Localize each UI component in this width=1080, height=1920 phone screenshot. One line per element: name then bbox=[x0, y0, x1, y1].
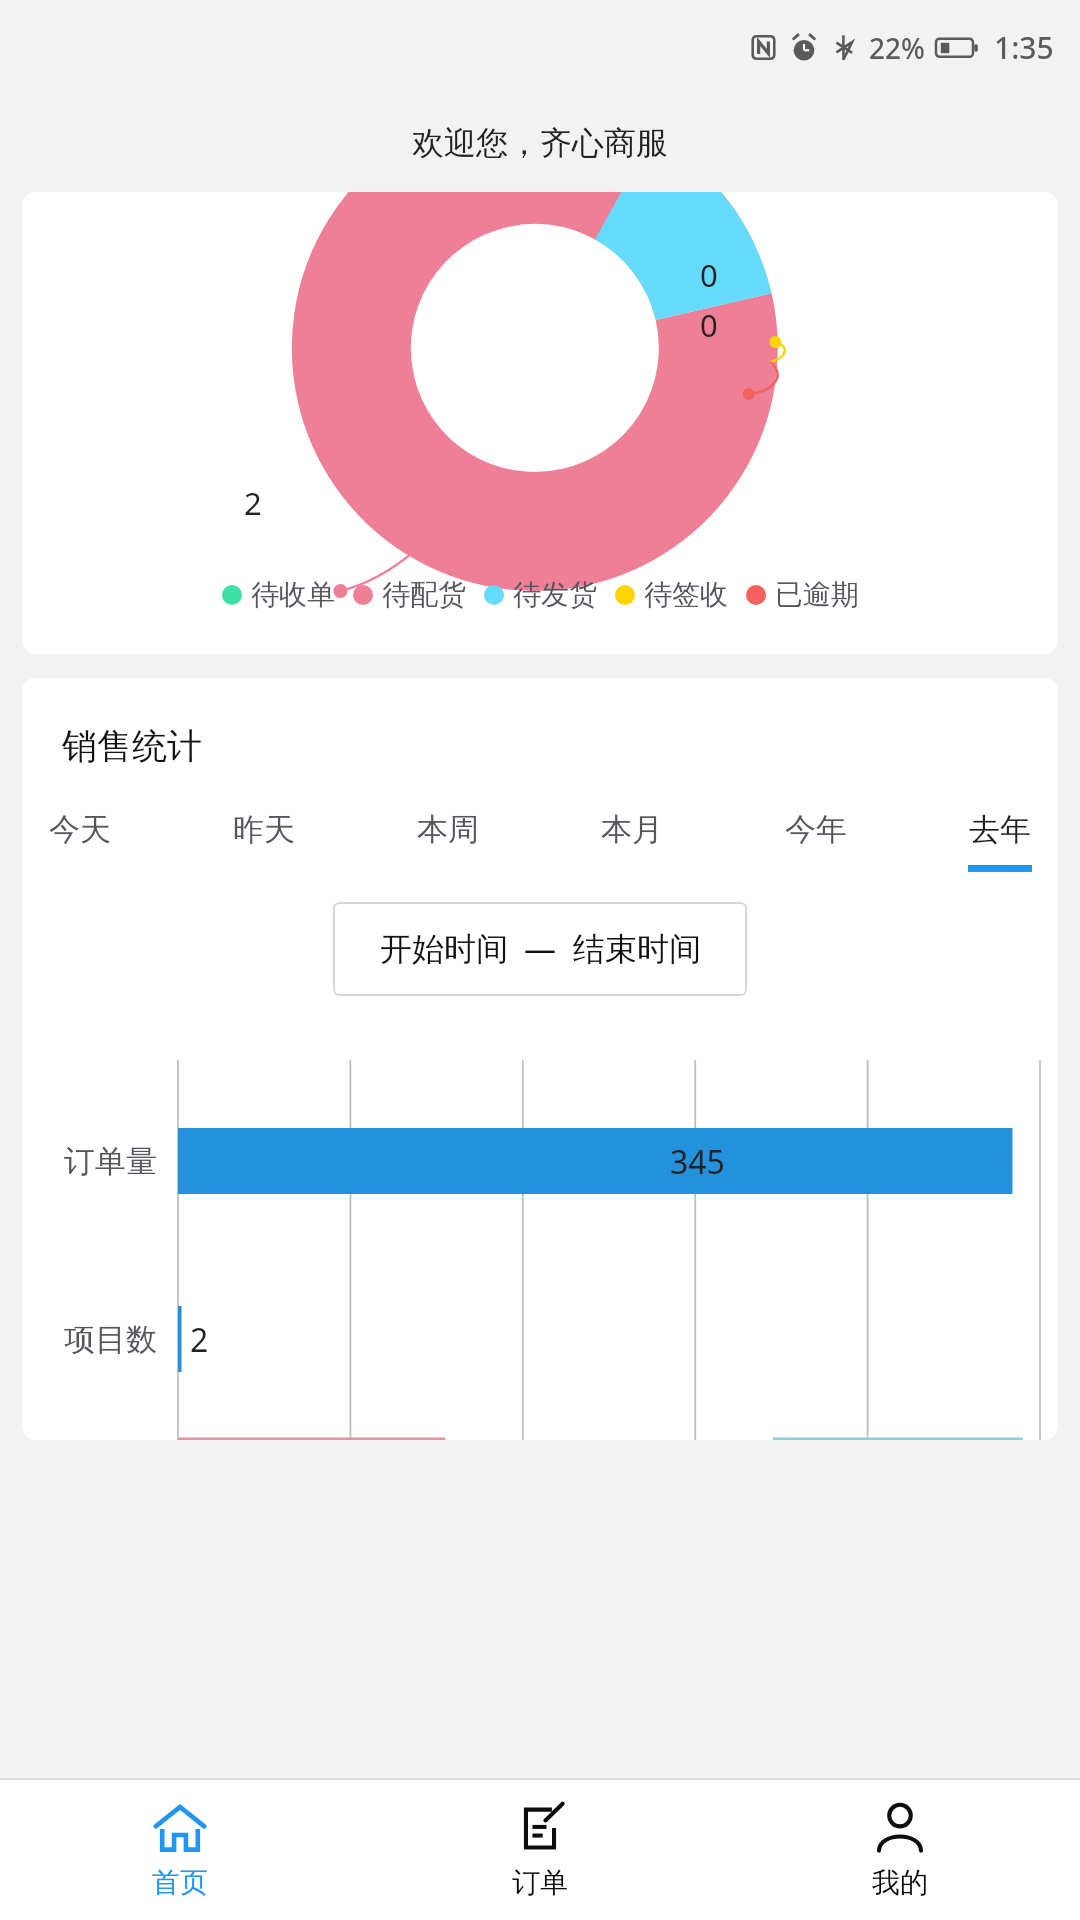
button[interactable]: 今年 bbox=[778, 810, 854, 872]
button[interactable]: 本周 bbox=[410, 810, 486, 872]
button[interactable]: 去年 bbox=[962, 810, 1038, 872]
button[interactable]: 首页 bbox=[0, 1780, 360, 1920]
staticText: 待收单 bbox=[251, 577, 335, 612]
staticText: 待配货 bbox=[382, 577, 466, 612]
button[interactable]: 我的 bbox=[720, 1780, 1080, 1920]
staticText: 22% bbox=[869, 29, 925, 67]
button[interactable]: 待发货 bbox=[475, 577, 606, 612]
staticText: 待签收 bbox=[644, 577, 728, 612]
button[interactable]: 待收单 bbox=[213, 577, 344, 612]
staticText: 销售统计 bbox=[62, 724, 202, 768]
button[interactable]: 今天 bbox=[42, 810, 118, 872]
staticText: 0 bbox=[700, 304, 718, 346]
staticText: 本周 bbox=[417, 810, 479, 849]
staticText: 1:35 bbox=[994, 27, 1054, 68]
button[interactable]: 已逾期 bbox=[737, 577, 868, 612]
staticText: 345 bbox=[670, 1140, 725, 1184]
button[interactable]: 开始时间 bbox=[333, 902, 747, 996]
button[interactable]: 订单 bbox=[360, 1780, 720, 1920]
staticText: 今天 bbox=[49, 810, 111, 849]
staticText: — bbox=[524, 927, 557, 971]
staticText: 欢迎您，齐心商服 bbox=[412, 123, 668, 163]
staticText: 昨天 bbox=[233, 810, 295, 849]
staticText: 2 bbox=[190, 1318, 209, 1362]
other: 首页 bbox=[153, 1801, 207, 1855]
staticText: 去年 bbox=[969, 810, 1031, 849]
staticText: 已逾期 bbox=[775, 577, 859, 612]
button[interactable]: 本月 bbox=[594, 810, 670, 872]
staticText: 0 bbox=[700, 254, 718, 296]
other: 我的 bbox=[873, 1801, 927, 1855]
staticText: 结束时间 bbox=[573, 929, 701, 969]
staticText: 首页 bbox=[152, 1865, 208, 1900]
staticText: 开始时间 bbox=[380, 929, 508, 969]
button[interactable]: 待配货 bbox=[344, 577, 475, 612]
staticText: 2 bbox=[244, 482, 262, 524]
staticText: 本月 bbox=[601, 810, 663, 849]
staticText: 我的 bbox=[872, 1865, 928, 1900]
staticText: 订单量 bbox=[64, 1142, 157, 1181]
staticText: 订单 bbox=[512, 1865, 568, 1900]
staticText: 待发货 bbox=[513, 577, 597, 612]
staticText: 项目数 bbox=[64, 1320, 157, 1359]
button[interactable]: 待签收 bbox=[606, 577, 737, 612]
button[interactable]: 昨天 bbox=[226, 810, 302, 872]
other: 订单 bbox=[513, 1801, 567, 1855]
staticText: 今年 bbox=[785, 810, 847, 849]
